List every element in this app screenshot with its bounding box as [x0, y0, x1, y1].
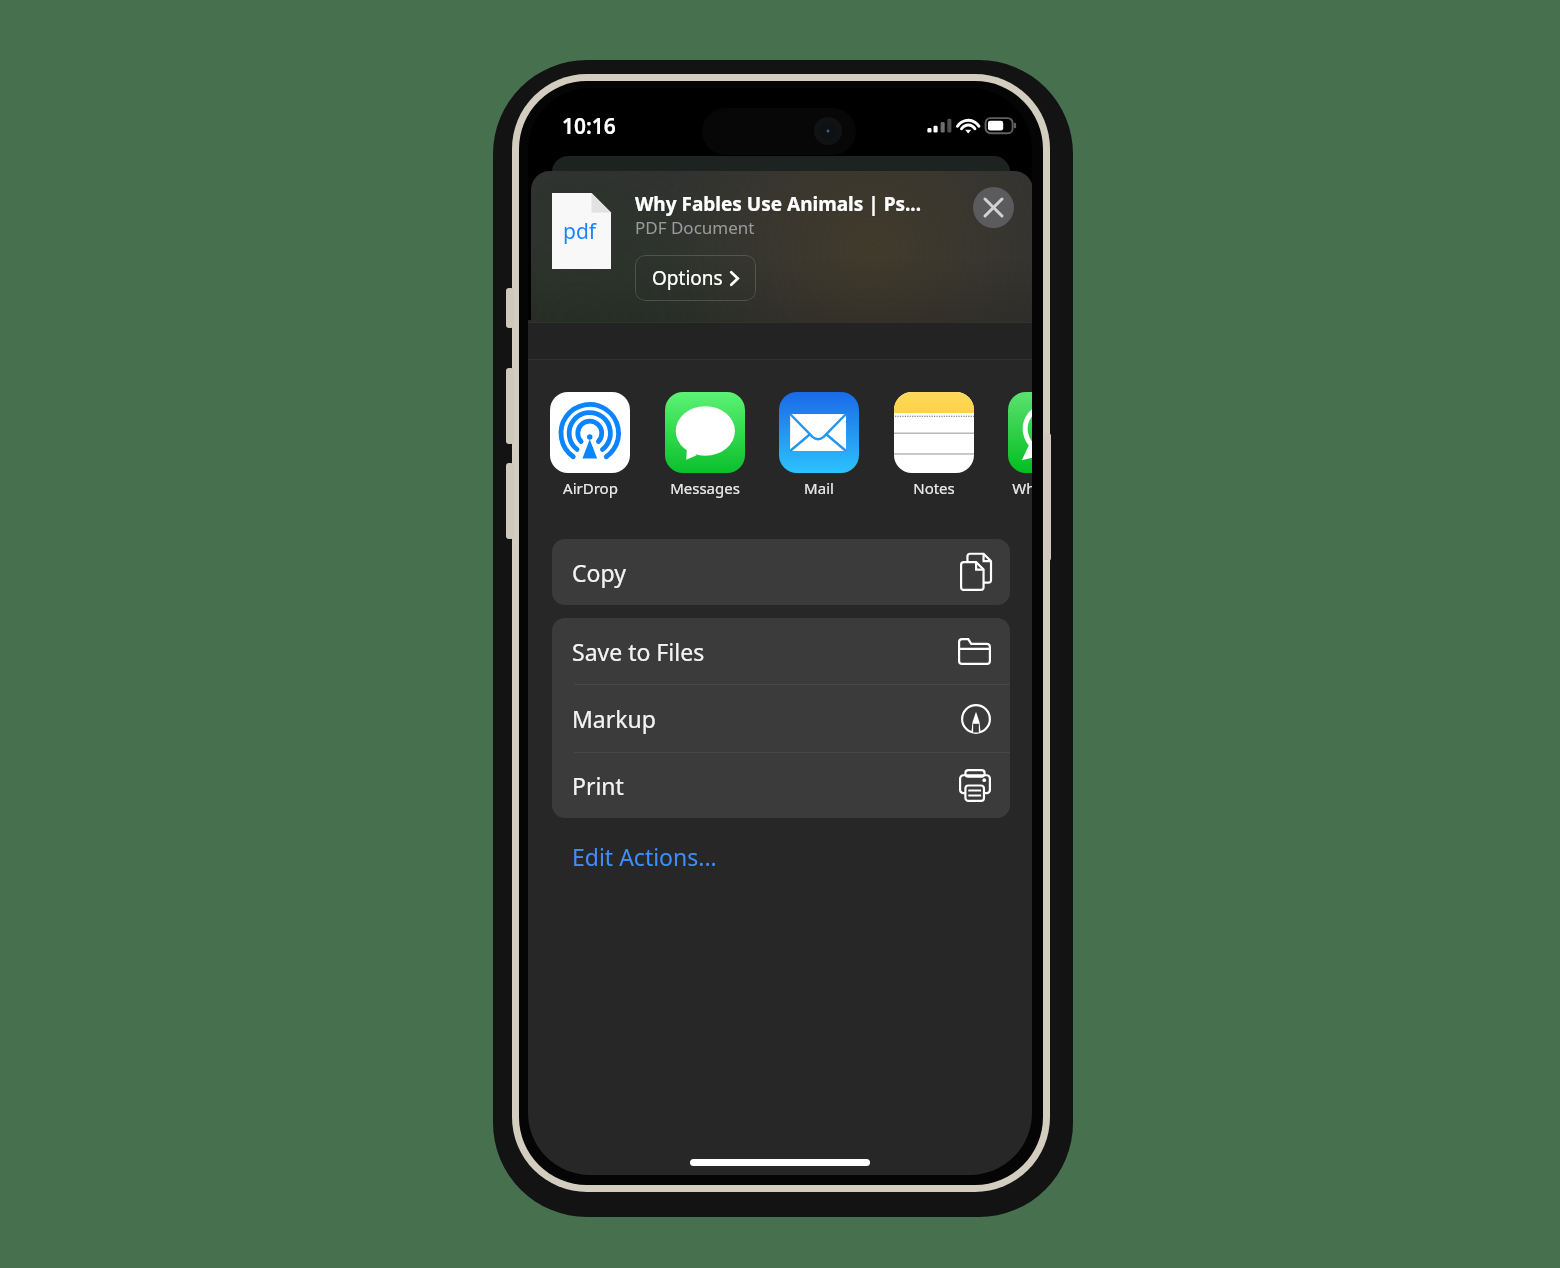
staticText: AirDrop: [563, 478, 618, 498]
staticText: Why Fables Use Animals | Ps...: [635, 191, 921, 217]
staticText: Notes: [913, 478, 955, 498]
button[interactable]: WhatsApp: [1008, 392, 1032, 498]
button[interactable]: Copy: [552, 539, 1010, 605]
button[interactable]: Options: [635, 255, 756, 301]
staticText: Markup: [572, 703, 656, 734]
button[interactable]: Save to Files: [552, 618, 1010, 684]
staticText: PDF Document: [635, 216, 755, 239]
button[interactable]: AirDrop: [550, 392, 630, 498]
staticText: Print: [572, 770, 624, 801]
staticText: Options: [652, 265, 723, 291]
staticText: 10:16: [562, 112, 616, 141]
button[interactable]: Close: [973, 187, 1014, 228]
staticText: Messages: [670, 478, 740, 498]
staticText: pdf: [563, 217, 597, 246]
staticText: Copy: [572, 557, 626, 588]
button[interactable]: Messages: [665, 392, 745, 498]
button[interactable]: Mail: [779, 392, 859, 498]
staticText: Mail: [804, 478, 834, 498]
staticText: Edit Actions...: [572, 841, 717, 872]
staticText: Save to Files: [572, 636, 705, 667]
staticText: WhatsApp: [1012, 478, 1032, 498]
button[interactable]: Notes: [894, 392, 974, 498]
button[interactable]: Print: [552, 753, 1010, 818]
button[interactable]: Edit Actions...: [552, 833, 752, 879]
button[interactable]: Markup: [552, 685, 1010, 752]
